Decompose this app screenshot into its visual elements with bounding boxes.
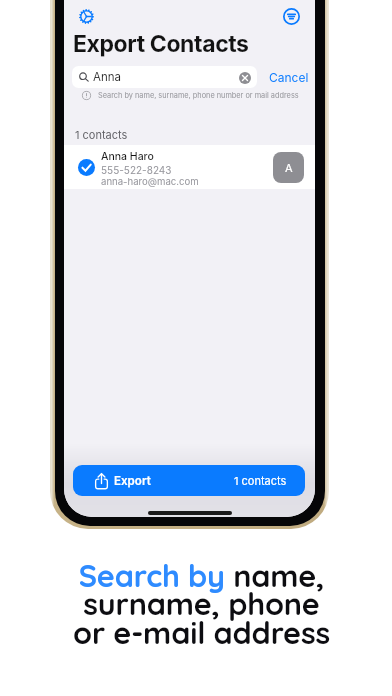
staticText: Anna	[93, 70, 121, 84]
button[interactable]: Anna	[72, 66, 257, 88]
staticText: 1 contacts	[234, 474, 287, 487]
staticText: Search by name, surname, phone or e-mail…	[73, 556, 330, 652]
staticText: Export	[114, 474, 151, 488]
staticText: A	[285, 161, 293, 174]
button[interactable]: Clear search	[238, 71, 251, 84]
button[interactable]: Anna Haro	[64, 145, 315, 189]
button[interactable]: Settings	[79, 9, 95, 25]
staticText: Anna Haro	[101, 150, 154, 163]
button[interactable]: Cancel	[269, 66, 309, 88]
staticText: anna-haro@mac.com	[101, 176, 199, 188]
staticText: 555-522-8243	[101, 164, 172, 176]
button[interactable]: Export	[73, 465, 305, 496]
button[interactable]: Filter	[283, 8, 300, 25]
staticText: Cancel	[269, 70, 309, 85]
staticText: Export Contacts	[73, 30, 249, 58]
staticText: Search by name, surname, phone number or…	[98, 91, 299, 100]
staticText: 1 contacts	[75, 128, 128, 141]
